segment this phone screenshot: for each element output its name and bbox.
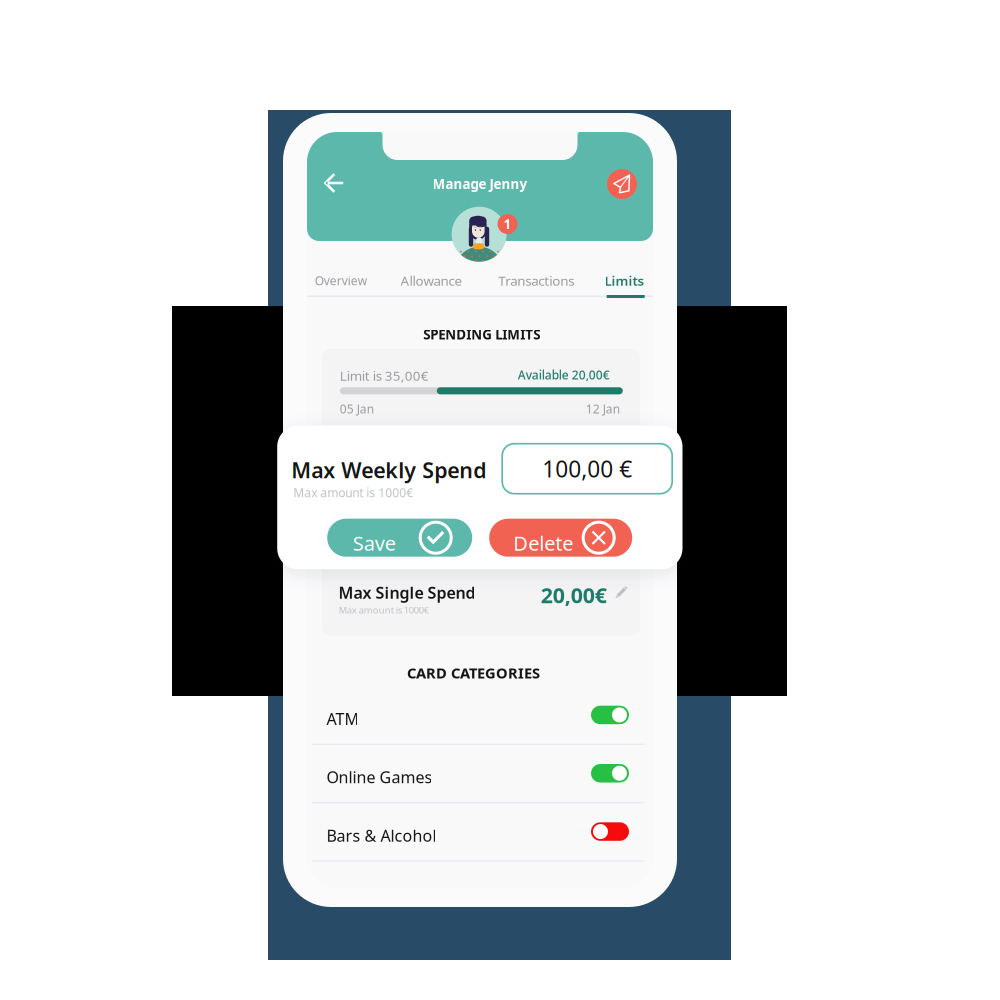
button[interactable]: Enabled [591,764,629,782]
staticText: SPENDING LIMITS [423,325,540,343]
button[interactable]: Limits [597,266,651,295]
staticText: Delete [513,530,573,556]
staticText: Max amount is 1000€ [293,485,413,501]
staticText: Online Games [326,766,432,788]
staticText: 12 Jan [586,401,620,417]
staticText: CARD CATEGORIES [407,663,540,682]
button[interactable]: Back [314,163,354,203]
button[interactable]: Allowance [393,266,469,295]
staticText: 05 Jan [340,401,374,417]
staticText: Save [353,530,396,556]
staticText: 1 [503,215,511,233]
staticText: 100,00 € [542,454,632,484]
staticText: 20,00€ [541,581,607,609]
staticText: ATM [326,708,359,729]
button[interactable]: Overview [305,266,377,295]
button[interactable]: Bars & Alcohol [307,810,653,868]
button[interactable]: Transactions [490,266,582,295]
staticText: Max amount is 1000€ [339,604,429,616]
staticText: Manage Jenny [432,175,527,193]
staticText: Bars & Alcohol [326,825,436,846]
staticText: Allowance [400,272,462,289]
button[interactable]: Send message [607,169,637,199]
staticText: Limits [604,272,644,289]
button[interactable]: Enabled [591,706,629,724]
staticText: Max Weekly Spend [291,456,486,484]
button[interactable]: Disabled [591,822,629,841]
button[interactable]: Save [327,519,472,557]
button[interactable]: Delete [489,519,632,557]
staticText: Limit is 35,00€ [340,367,429,384]
staticText: Available 20,00€ [518,367,610,383]
staticText: Transactions [498,272,574,289]
button[interactable]: Online Games [307,751,653,810]
staticText: Max Single Spend [338,582,475,603]
button[interactable]: ATM [307,693,653,751]
staticText: Overview [315,272,367,288]
button[interactable]: Edit Max Single Spend [613,583,631,601]
